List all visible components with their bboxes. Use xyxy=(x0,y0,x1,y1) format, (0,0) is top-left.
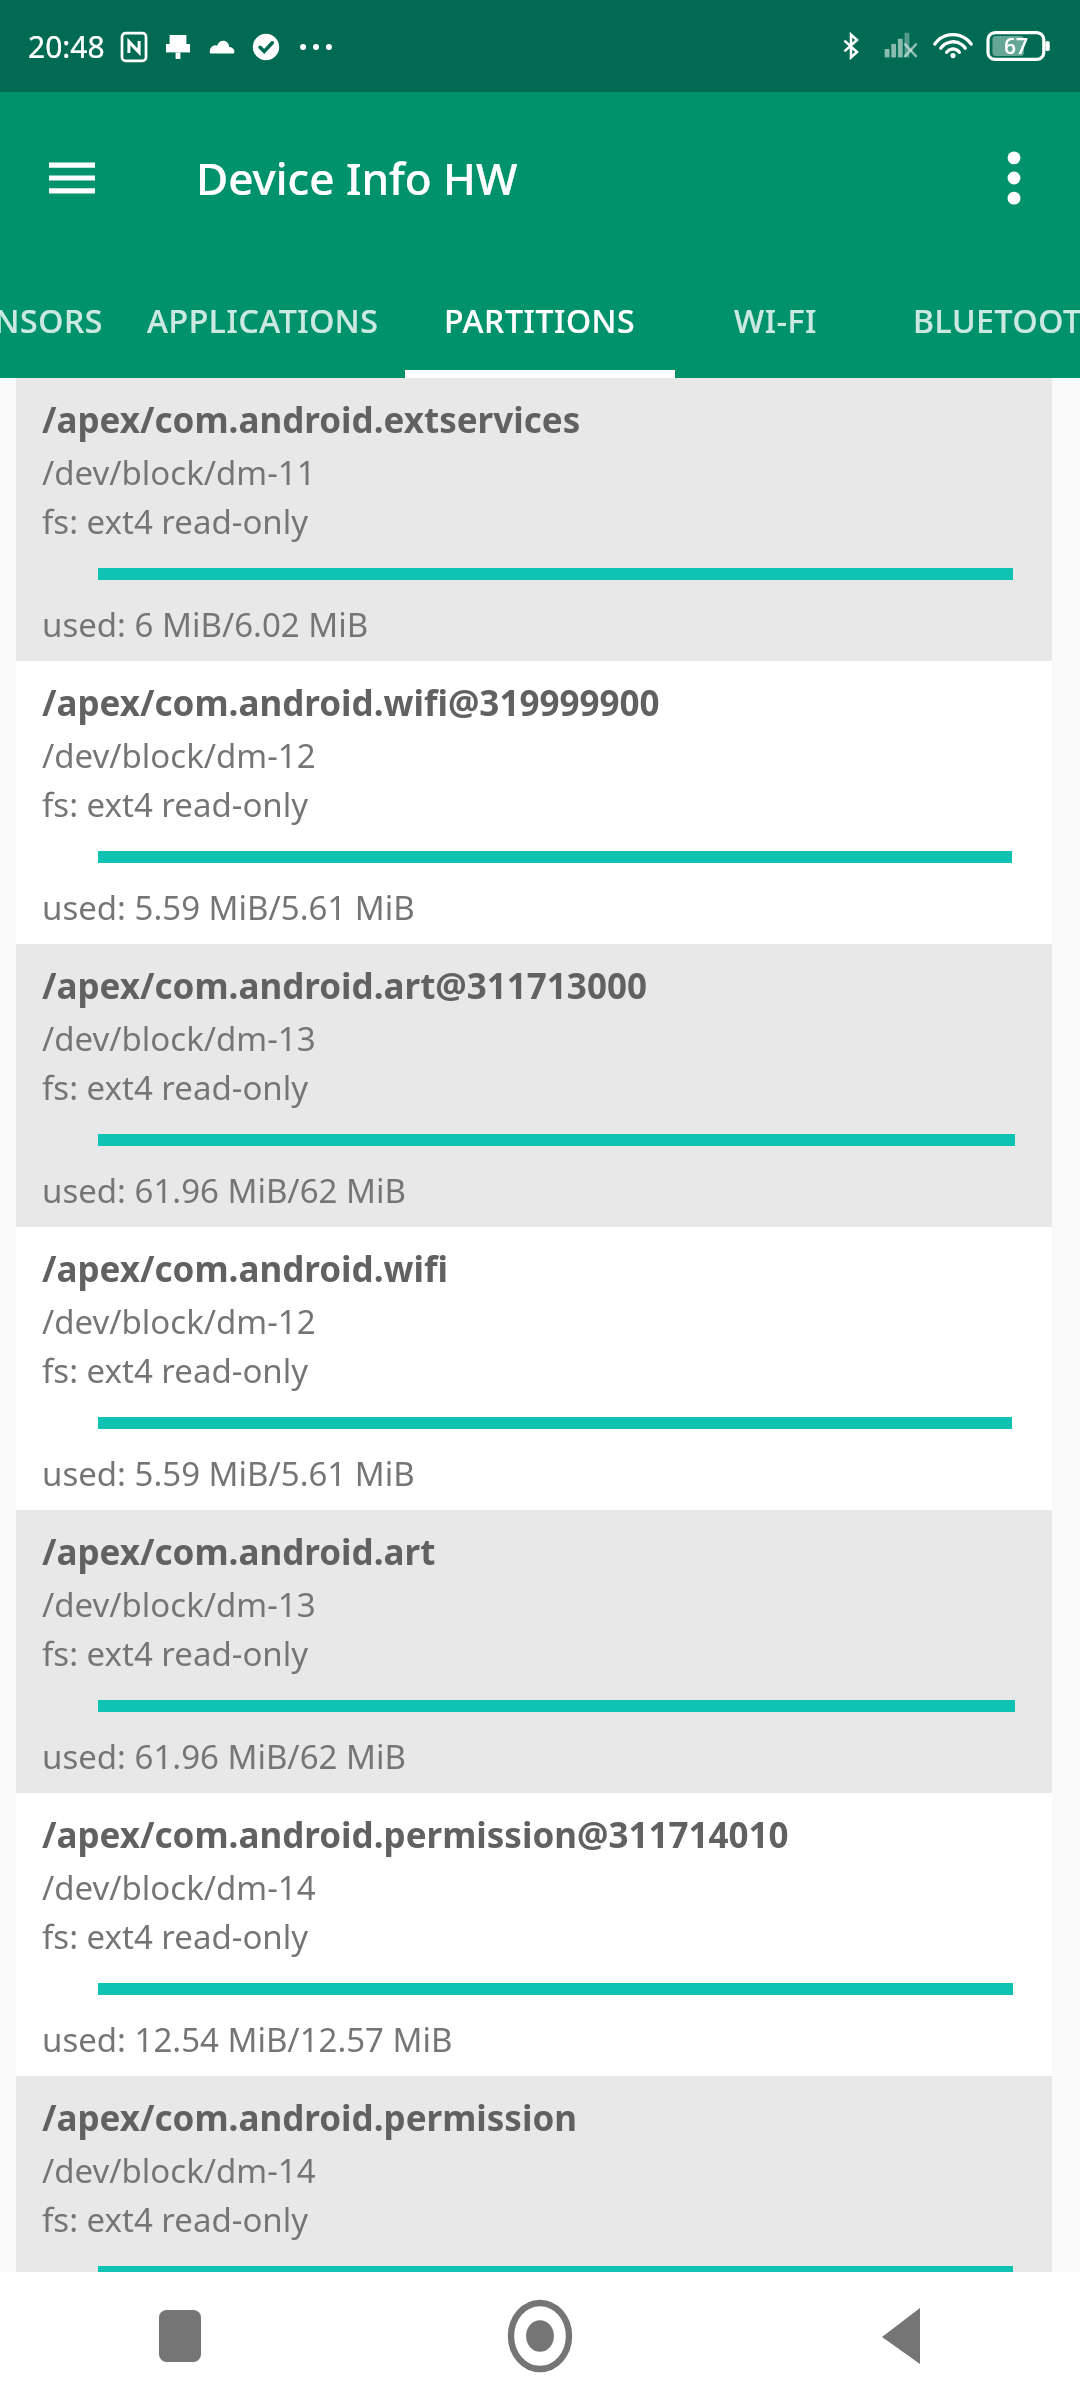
button[interactable]: WI-FI xyxy=(675,264,875,378)
staticText: /apex/com.android.art xyxy=(42,1528,436,1576)
staticText: /dev/block/dm-12 xyxy=(42,733,316,778)
button[interactable]: Open navigation menu xyxy=(30,136,114,220)
staticText: 20:48 xyxy=(28,26,105,67)
button[interactable]: Back xyxy=(720,2272,1080,2400)
staticText: /dev/block/dm-14 xyxy=(42,2148,316,2193)
staticText: SENSORS xyxy=(0,299,103,343)
staticText: fs: ext4 read-only xyxy=(42,782,309,827)
staticText: /apex/com.android.extservices xyxy=(42,396,581,444)
button[interactable]: /apex/com.android.wifi xyxy=(16,1227,1052,1510)
button[interactable]: /apex/com.android.art@311713000 xyxy=(16,944,1052,1227)
staticText: 67 xyxy=(1004,32,1029,61)
staticText: fs: ext4 read-only xyxy=(42,1914,309,1959)
staticText: /apex/com.android.wifi@319999900 xyxy=(42,679,660,727)
button[interactable]: BLUETOOTH xyxy=(875,264,1080,378)
staticText: fs: ext4 read-only xyxy=(42,1065,309,1110)
staticText: BLUETOOTH xyxy=(913,299,1080,343)
button[interactable]: APPLICATIONS xyxy=(120,264,405,378)
staticText: /dev/block/dm-14 xyxy=(42,1865,316,1910)
staticText: used: 6 MiB/6.02 MiB xyxy=(42,602,369,647)
staticText: fs: ext4 read-only xyxy=(42,499,309,544)
staticText: used: 61.96 MiB/62 MiB xyxy=(42,1734,406,1779)
staticText: used: 5.59 MiB/5.61 MiB xyxy=(42,885,415,930)
staticText: /apex/com.android.art@311713000 xyxy=(42,962,647,1010)
button[interactable]: PARTITIONS xyxy=(405,264,675,378)
staticText: /dev/block/dm-11 xyxy=(42,450,316,495)
button[interactable]: Recent apps xyxy=(0,2272,360,2400)
button[interactable]: /apex/com.android.permission xyxy=(16,2076,1052,2272)
staticText: fs: ext4 read-only xyxy=(42,1631,309,1676)
staticText: APPLICATIONS xyxy=(147,299,379,343)
staticText: /dev/block/dm-13 xyxy=(42,1016,316,1061)
staticText: fs: ext4 read-only xyxy=(42,1348,309,1393)
staticText: /apex/com.android.wifi xyxy=(42,1245,448,1293)
button[interactable]: Home xyxy=(360,2272,720,2400)
staticText: used: 61.96 MiB/62 MiB xyxy=(42,1168,406,1213)
button[interactable]: /apex/com.android.permission@311714010 xyxy=(16,1793,1052,2076)
staticText: Device Info HW xyxy=(196,148,518,208)
button[interactable]: /apex/com.android.extservices xyxy=(16,378,1052,661)
staticText: WI-FI xyxy=(734,299,817,343)
staticText: /apex/com.android.permission xyxy=(42,2094,578,2142)
staticText: fs: ext4 read-only xyxy=(42,2197,309,2242)
button[interactable]: More options xyxy=(972,136,1056,220)
button[interactable]: /apex/com.android.art xyxy=(16,1510,1052,1793)
button[interactable]: /apex/com.android.wifi@319999900 xyxy=(16,661,1052,944)
button[interactable]: SENSORS xyxy=(0,264,120,378)
staticText: /apex/com.android.permission@311714010 xyxy=(42,1811,789,1859)
staticText: /dev/block/dm-13 xyxy=(42,1582,316,1627)
staticText: used: 5.59 MiB/5.61 MiB xyxy=(42,1451,415,1496)
staticText: PARTITIONS xyxy=(444,299,636,343)
staticText: used: 12.54 MiB/12.57 MiB xyxy=(42,2017,453,2062)
staticText: /dev/block/dm-12 xyxy=(42,1299,316,1344)
